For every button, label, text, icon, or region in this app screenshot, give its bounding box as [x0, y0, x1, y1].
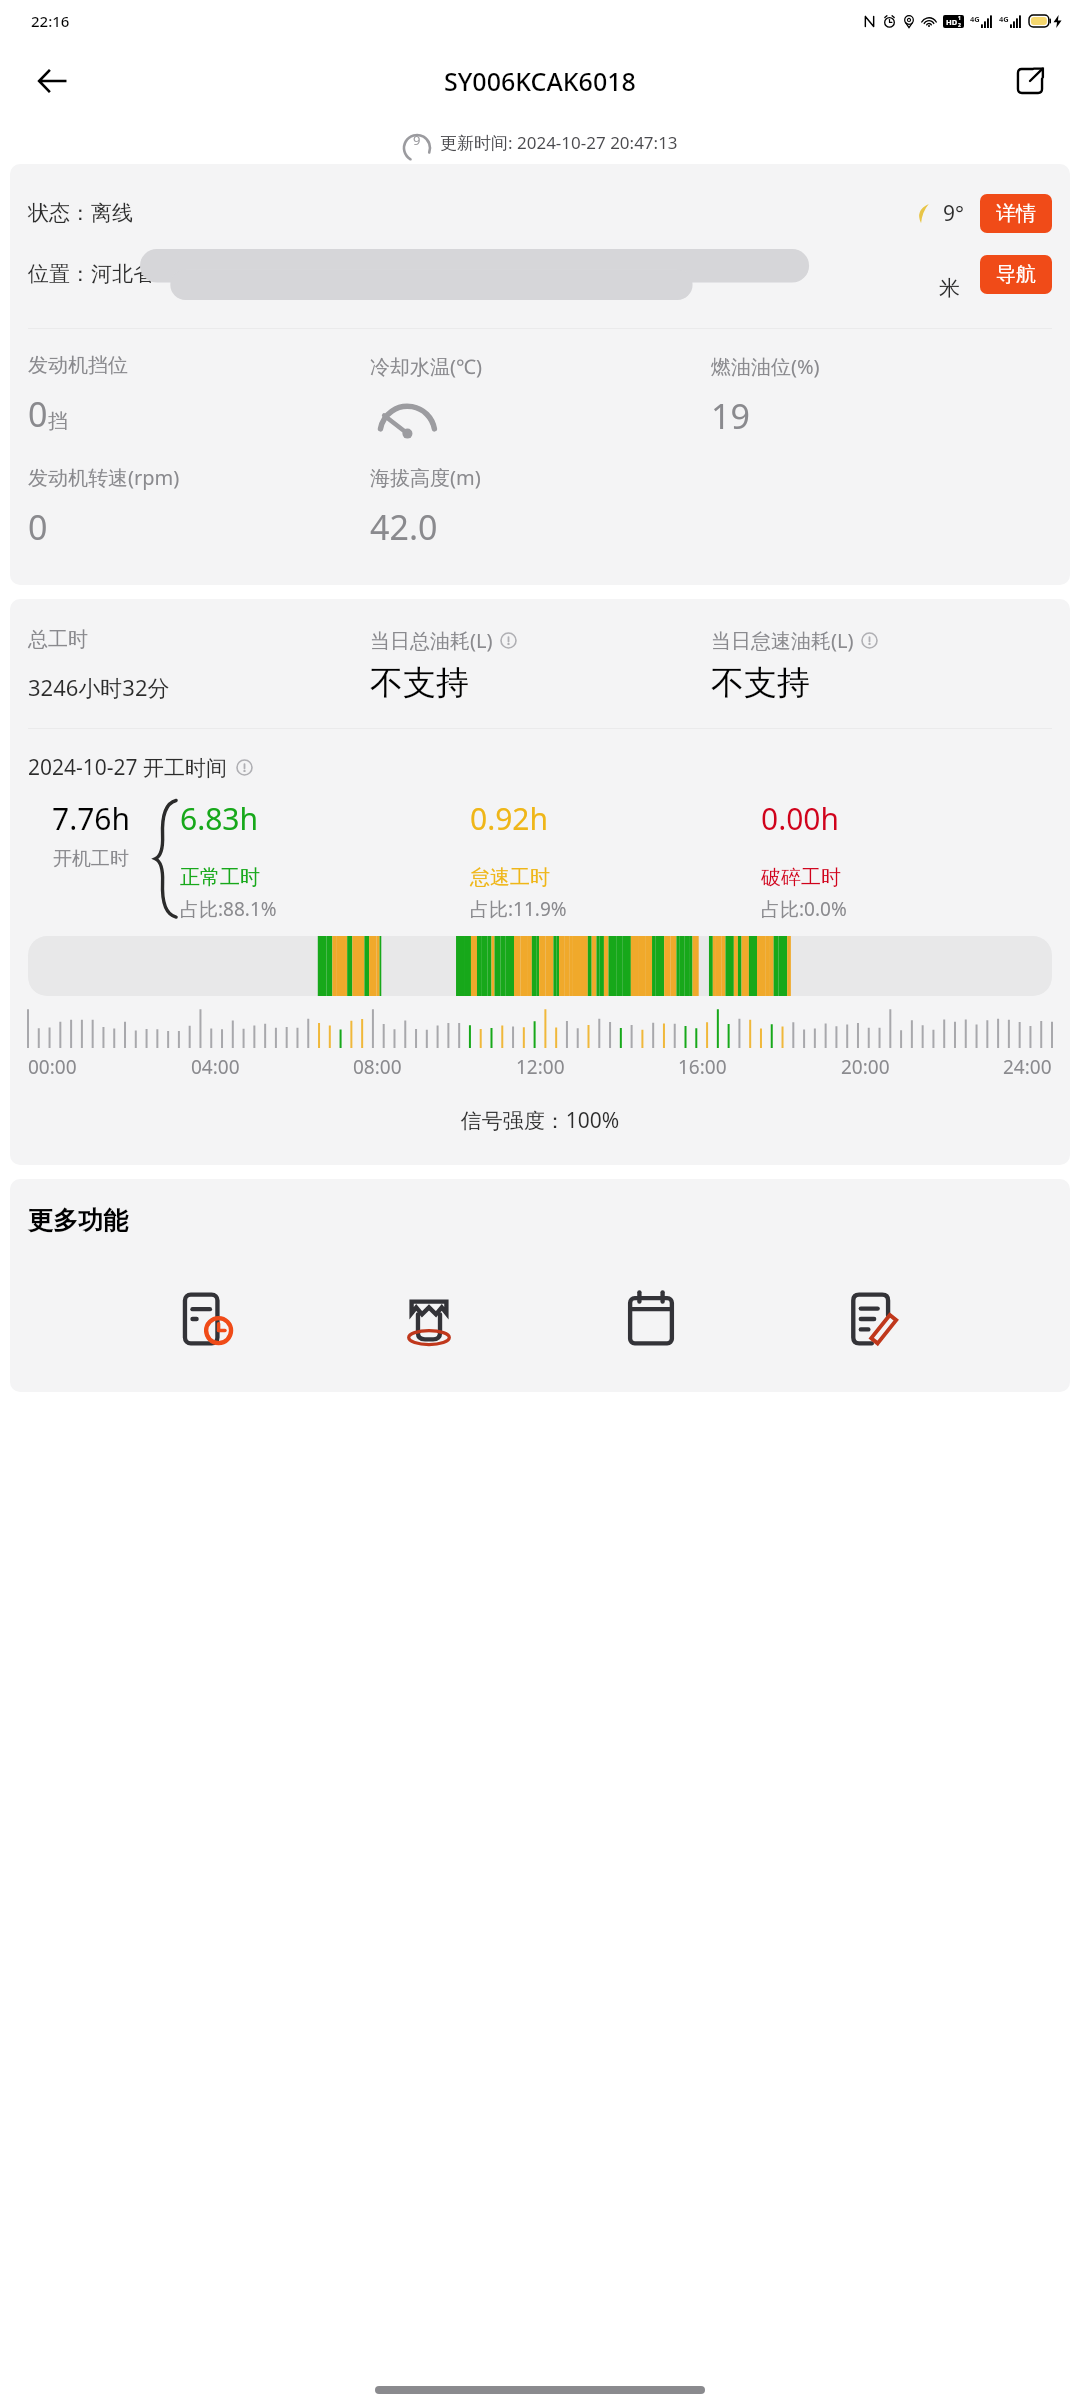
staticText: 发动机挡位 [28, 353, 128, 378]
staticText: 怠速工时 [470, 865, 550, 890]
staticText: 16:00 [678, 1054, 727, 1080]
staticText: 9° [943, 199, 964, 228]
staticText: 4G [970, 14, 980, 24]
staticText: 00:00 [28, 1054, 77, 1080]
button[interactable]: 导航 [980, 255, 1052, 294]
staticText: 12:00 [516, 1054, 565, 1080]
button[interactable]: Calendar [608, 1276, 694, 1362]
staticText: 导航 [996, 262, 1036, 287]
staticText: 42.0 [370, 504, 438, 550]
staticText: 发动机转速(rpm) [28, 464, 180, 491]
staticText: 当日总油耗(L) [370, 627, 493, 654]
staticText: 详情 [996, 201, 1036, 226]
staticText: 6.83h [180, 798, 259, 839]
staticText: HD [946, 17, 958, 27]
staticText: 19 [711, 393, 750, 439]
staticText: 1 [958, 15, 961, 22]
staticText: 占比:88.1% [180, 896, 277, 922]
staticText: 0 [28, 391, 48, 437]
staticText: 4G [999, 14, 1009, 24]
staticText: 0.00h [761, 798, 840, 839]
staticText: 占比:0.0% [761, 896, 847, 922]
staticText: 04:00 [191, 1054, 240, 1080]
staticText: 开机工时 [53, 847, 129, 871]
staticText: 更多功能 [28, 1205, 128, 1236]
staticText: 3246小时32分 [28, 672, 170, 702]
staticText: 9 [413, 131, 421, 149]
staticText: 更新时间: 2024-10-27 20:47:13 [440, 131, 678, 154]
staticText: 燃油油位(%) [711, 353, 820, 380]
staticText: 不支持 [370, 662, 469, 704]
staticText: 当日怠速油耗(L) [711, 627, 854, 654]
button[interactable]: Maintenance [386, 1276, 472, 1362]
staticText: 不支持 [711, 662, 810, 704]
button[interactable]: Report [830, 1276, 916, 1362]
staticText: 2024-10-27 开工时间 [28, 753, 228, 782]
staticText: 0.92h [470, 798, 549, 839]
staticText: 总工时 [28, 627, 88, 652]
staticText: 米 [939, 275, 960, 301]
staticText: 海拔高度(m) [370, 464, 481, 491]
button[interactable]: 详情 [980, 194, 1052, 233]
staticText: 7.76h [52, 798, 131, 839]
staticText: 正常工时 [180, 865, 260, 890]
staticText: 破碎工时 [761, 865, 841, 890]
staticText: 占比:11.9% [470, 896, 567, 922]
staticText: 22:16 [31, 11, 70, 31]
staticText: 08:00 [353, 1054, 402, 1080]
staticText: 挡 [48, 409, 68, 434]
staticText: 位置：河北省 [28, 261, 154, 287]
button[interactable]: Work records [164, 1276, 250, 1362]
staticText: 24:00 [1003, 1054, 1052, 1080]
staticText: 状态：离线 [28, 200, 133, 226]
staticText: 0 [28, 504, 48, 550]
staticText: 2 [958, 22, 961, 28]
staticText: 20:00 [841, 1054, 890, 1080]
staticText: 冷却水温(℃) [370, 353, 482, 380]
button[interactable]: Share [1004, 55, 1056, 107]
button[interactable]: Back [26, 55, 78, 107]
staticText: 信号强度：100% [28, 1106, 1052, 1135]
staticText: SY006KCAK6018 [444, 64, 636, 98]
